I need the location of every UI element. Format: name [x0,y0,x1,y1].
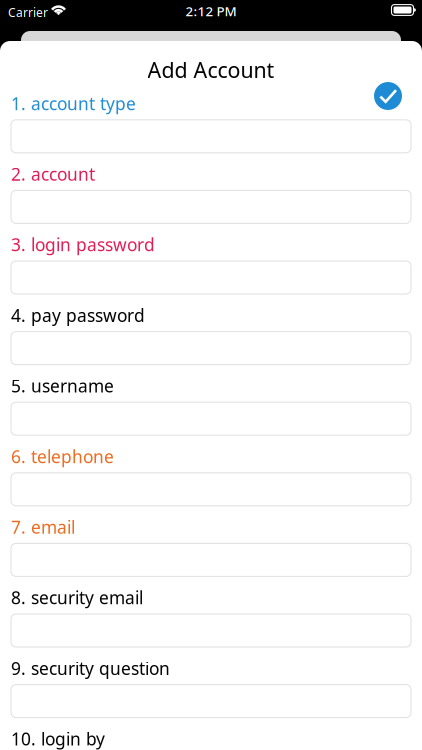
staticText: 6. telephone [11,445,114,468]
button[interactable]: 1. account type [11,120,411,153]
button[interactable]: 2. account [11,190,411,223]
staticText: 9. security question [11,657,170,680]
staticText: Add Account [147,55,274,84]
button[interactable]: 3. login password [11,261,411,294]
staticText: 5. username [11,374,114,397]
button[interactable]: 5. username [11,402,411,435]
staticText: 1. account type [11,92,136,115]
button[interactable]: 8. security email [11,614,411,647]
staticText: 8. security email [11,586,143,609]
button[interactable]: 4. pay password [11,332,411,365]
staticText: 3. login password [11,233,155,256]
button[interactable]: 9. security question [11,685,411,718]
button[interactable]: 7. email [11,543,411,576]
staticText: 10. login by [11,727,105,750]
staticText: Carrier [8,4,48,20]
staticText: 2:12 PM [185,2,236,20]
button[interactable]: Account type selected [374,82,402,110]
staticText: 7. email [11,515,75,538]
staticText: 4. pay password [11,304,145,327]
staticText: 2. account [11,162,95,185]
button[interactable]: 6. telephone [11,473,411,506]
